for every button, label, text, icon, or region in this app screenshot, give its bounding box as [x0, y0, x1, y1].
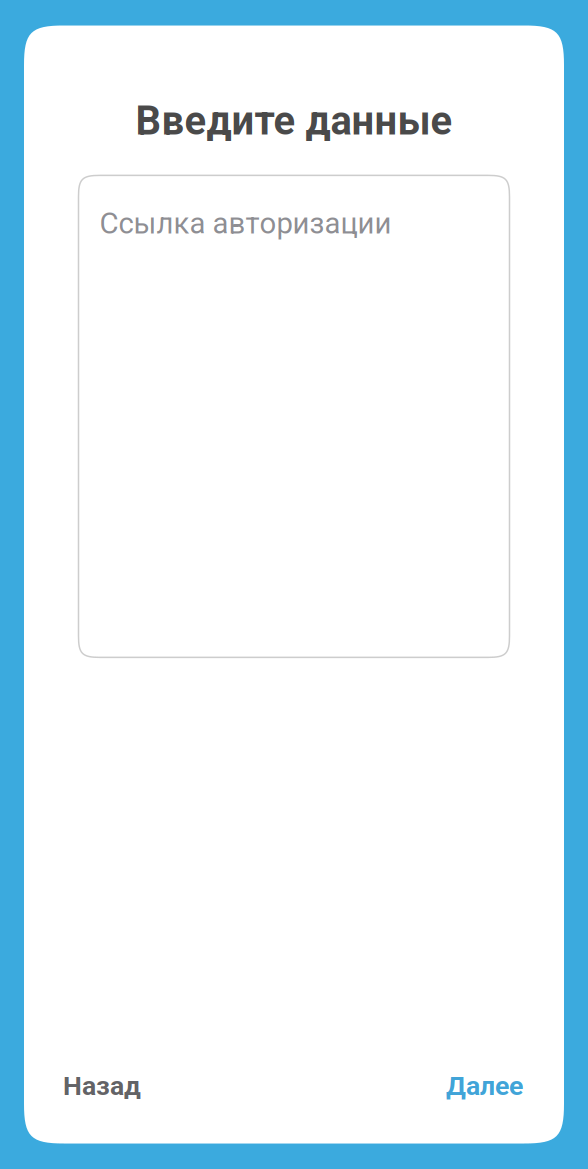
staticText: Далее [446, 1070, 523, 1101]
button[interactable]: Ссылка авторизации [78, 175, 509, 657]
staticText: Назад [63, 1070, 141, 1101]
staticText: Введите данные [135, 97, 452, 144]
button[interactable]: Далее [432, 1058, 537, 1113]
button[interactable]: Назад [49, 1058, 155, 1113]
staticText: Ссылка авторизации [99, 206, 391, 241]
